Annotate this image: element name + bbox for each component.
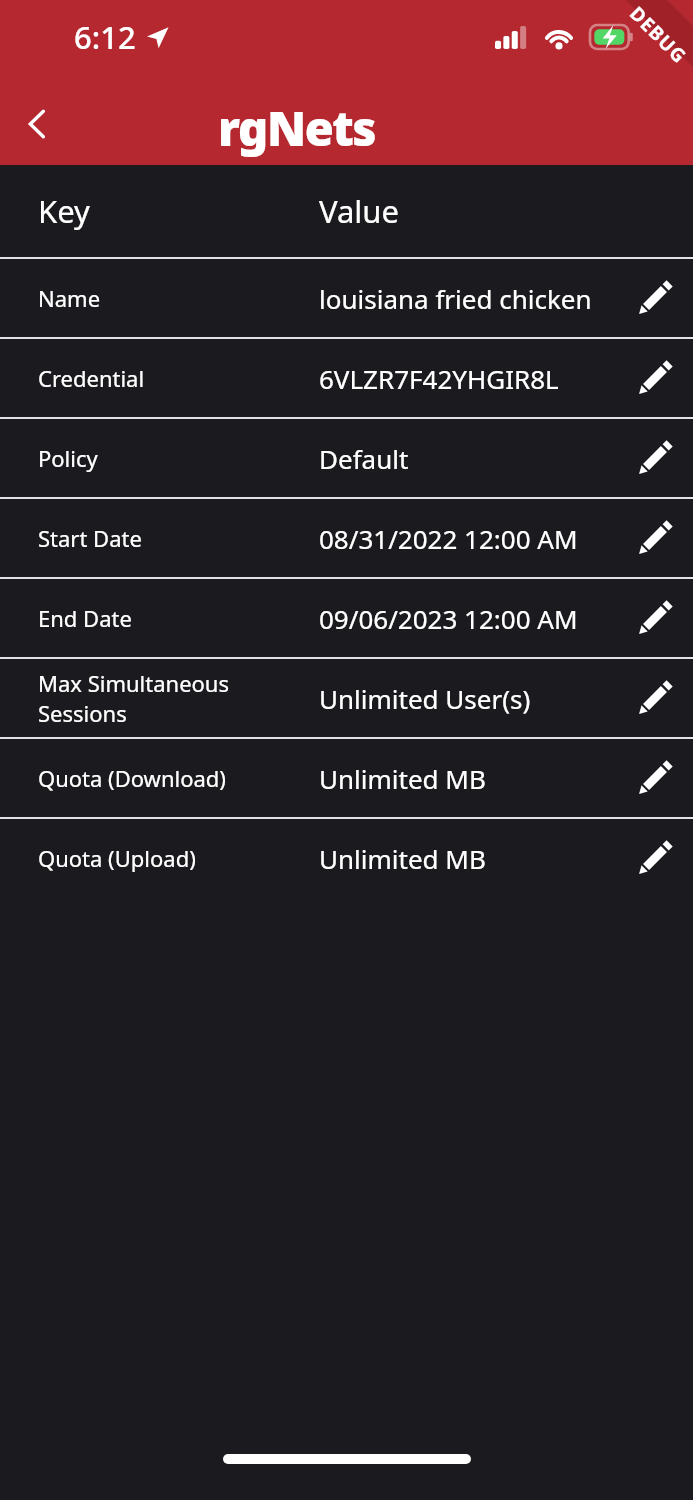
button[interactable]: Quota (Download) (0, 739, 693, 817)
staticText: 6VLZR7F42YHGIR8L (319, 361, 559, 396)
staticText: Key (38, 190, 90, 232)
button[interactable]: Edit Start Date (617, 499, 693, 577)
button[interactable]: Back (6, 93, 68, 155)
button[interactable]: Edit Max Simultaneous Sessions (617, 659, 693, 737)
staticText: Default (319, 441, 409, 476)
staticText: DEBUG (624, 1, 693, 69)
button[interactable]: Policy (0, 419, 693, 497)
button[interactable]: Edit Name (617, 259, 693, 337)
button[interactable]: rg (218, 96, 376, 160)
staticText: louisiana fried chicken (319, 281, 592, 316)
staticText: rg (218, 96, 267, 160)
staticText: Policy (38, 443, 98, 473)
button[interactable]: Start Date (0, 499, 693, 577)
button[interactable]: Name (0, 259, 693, 337)
button[interactable]: End Date (0, 579, 693, 657)
staticText: End Date (38, 603, 132, 633)
staticText: Value (319, 190, 400, 232)
button[interactable]: Quota (Upload) (0, 819, 693, 897)
button[interactable]: Max Simultaneous Sessions (0, 659, 693, 737)
staticText: Unlimited User(s) (319, 681, 531, 716)
staticText: Unlimited MB (319, 841, 486, 876)
staticText: 08/31/2022 12:00 AM (319, 521, 578, 556)
staticText: Nets (267, 96, 376, 160)
button[interactable]: Edit Policy (617, 419, 693, 497)
button[interactable]: Edit End Date (617, 579, 693, 657)
staticText: Quota (Download) (38, 763, 226, 793)
button[interactable]: Credential (0, 339, 693, 417)
staticText: Name (38, 283, 101, 313)
staticText: Start Date (38, 523, 142, 553)
button[interactable]: Edit Credential (617, 339, 693, 417)
staticText: 09/06/2023 12:00 AM (319, 601, 578, 636)
staticText: Unlimited MB (319, 761, 486, 796)
button[interactable]: Edit Quota (Download) (617, 739, 693, 817)
staticText: Quota (Upload) (38, 843, 196, 873)
staticText: 6:12 (74, 16, 136, 58)
staticText: Max Simultaneous Sessions (38, 668, 229, 728)
button[interactable]: Edit Quota (Upload) (617, 819, 693, 897)
staticText: Credential (38, 363, 145, 393)
